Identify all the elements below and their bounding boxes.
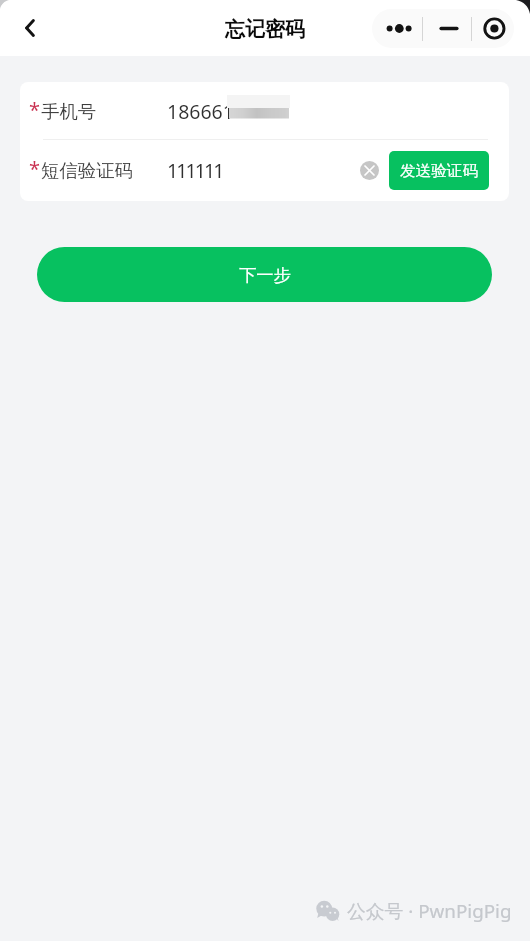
staticText: * [29, 96, 41, 123]
staticText: 手机号 [41, 100, 97, 123]
button[interactable]: 下一步 [37, 247, 492, 302]
button[interactable]: More options [372, 9, 422, 48]
staticText: 公众号 · PwnPigPig [347, 898, 512, 924]
staticText: 186661 [167, 98, 234, 125]
button[interactable]: * [20, 140, 509, 201]
button[interactable]: Close [472, 9, 514, 48]
staticText: 下一步 [239, 264, 291, 286]
button[interactable]: * [20, 82, 509, 140]
button[interactable]: Clear [360, 161, 379, 180]
staticText: 短信验证码 [41, 159, 133, 182]
staticText: * [29, 155, 41, 182]
button[interactable]: 发送验证码 [389, 151, 489, 190]
button[interactable]: Minimize [423, 9, 471, 48]
staticText: 忘记密码 [225, 17, 305, 42]
staticText: 111111 [167, 157, 223, 184]
staticText: 发送验证码 [400, 161, 478, 181]
button[interactable]: Back [8, 0, 52, 56]
